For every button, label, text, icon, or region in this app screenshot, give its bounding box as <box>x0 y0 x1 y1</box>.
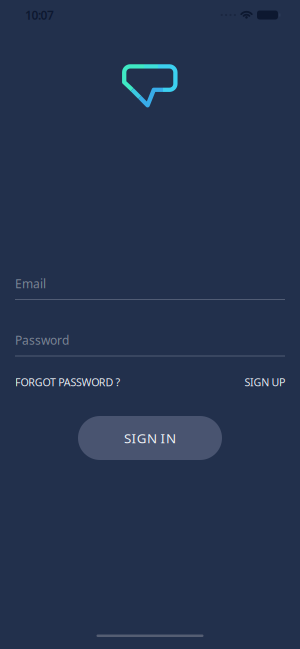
button[interactable]: SIGN UP <box>244 376 285 387</box>
staticText: Password <box>15 332 69 348</box>
staticText: FORGOT PASSWORD ? <box>15 375 121 389</box>
button[interactable]: FORGOT PASSWORD ? <box>15 376 121 387</box>
staticText: SIGN IN <box>124 429 176 447</box>
button[interactable]: SIGN IN <box>78 416 222 460</box>
button[interactable]: Password <box>0 334 300 356</box>
button[interactable]: Email <box>0 278 300 300</box>
staticText: SIGN UP <box>244 375 285 389</box>
staticText: Email <box>15 275 46 291</box>
staticText: 10:07 <box>25 7 54 23</box>
